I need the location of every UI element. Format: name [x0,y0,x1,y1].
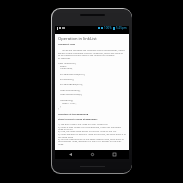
staticText: Steps to insert a Node at Beginning : [58,118,98,121]
staticText: node deleteNode(n); [60,93,83,96]
staticText: this previous Node, whether it is the NU… [58,140,122,143]
staticText: node to its list [58,128,73,131]
staticText: } [58,107,59,110]
staticText: public [60,65,67,68]
staticText: 1) The first Node is the Node for your L… [58,123,108,126]
staticText: 5) And the Head pointer of the newly add… [58,138,124,141]
staticText: LinkedList(){ [60,99,74,102]
staticText: of its methods that are used in the Link… [58,54,115,57]
button[interactable]: Back [63,150,77,159]
staticText: the head node [58,136,73,139]
staticText: Operation in linkList [58,36,97,42]
staticText: head = NULL; [62,102,77,105]
staticText: 4) When we want to add any Node at the f… [58,133,126,136]
staticText: we will create a separate class for Link… [58,52,123,55]
staticText: 2) When a new Linked List is established… [58,126,122,129]
staticText: int isEmpty(); [60,78,74,81]
staticText: Node head; [60,67,73,70]
staticText: node searchItem(); [60,89,81,92]
staticText: int addAtBegin(int n); [60,83,83,86]
staticText: class LinkedList { [58,62,77,65]
staticText: its methods. [58,57,71,60]
staticText: } [60,105,61,108]
button[interactable]: Home [85,150,99,159]
staticText: node. [58,143,64,146]
staticText: int addNewNode(int n); [60,73,86,76]
staticText: LinkedList class [58,43,76,46]
staticText: 100% [104,26,112,30]
button[interactable]: Recent apps [107,150,121,159]
staticText: 5:25pm [116,26,127,30]
staticText: Insertion at the Beginning [58,113,89,116]
staticText: Up we are following the complete OOPS me… [62,49,125,52]
staticText: 3) Now, the head node points to the firs… [58,130,117,133]
